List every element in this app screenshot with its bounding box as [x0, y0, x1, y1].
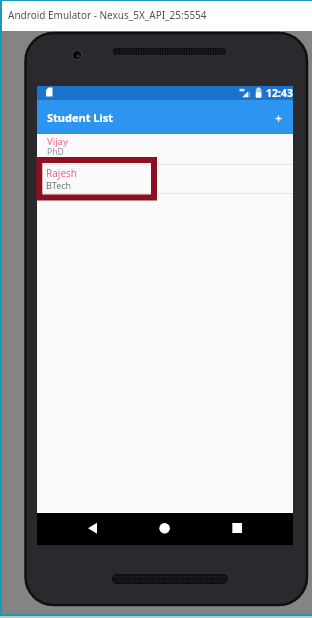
button[interactable] — [84, 518, 102, 538]
button[interactable]: Rajesh — [37, 165, 293, 193]
staticText: Student List — [47, 110, 114, 125]
staticText: Vijay — [47, 135, 68, 148]
staticText: BTech — [46, 179, 72, 191]
button[interactable]: Android Emulator - Nexus_5X_API_25:5554 — [2, 1, 312, 31]
button[interactable] — [270, 109, 287, 126]
button[interactable] — [228, 518, 246, 538]
button[interactable]: Vijay — [37, 134, 293, 165]
staticText: Rajesh — [46, 166, 78, 180]
staticText: Android Emulator - Nexus_5X_API_25:5554 — [8, 8, 207, 22]
staticText: PhD — [47, 146, 64, 158]
button[interactable]: Student List — [37, 100, 293, 134]
button[interactable] — [155, 518, 175, 538]
staticText: 12:43 — [266, 86, 293, 100]
